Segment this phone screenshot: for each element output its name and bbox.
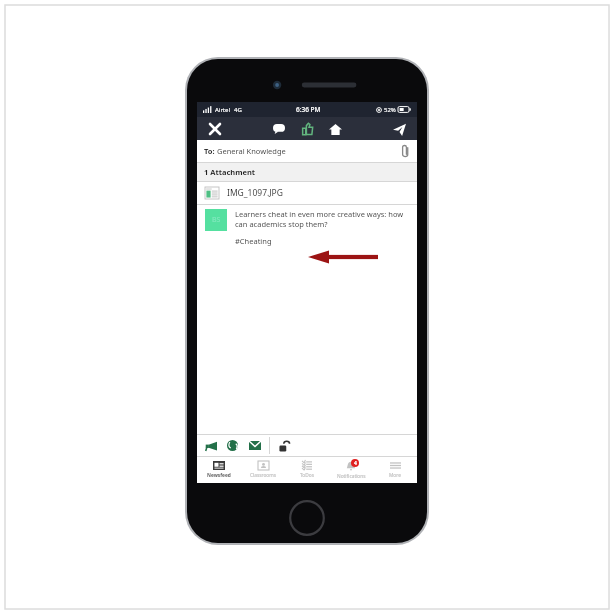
button[interactable]: Send <box>389 119 409 139</box>
staticText: 6:36 PM <box>296 105 321 114</box>
button[interactable]: Unlock <box>276 437 293 454</box>
staticText: #Cheating <box>235 236 272 246</box>
staticText: Learners cheat in even more creative way… <box>235 209 409 229</box>
button[interactable]: Like <box>296 118 318 140</box>
staticText: 52% <box>384 106 396 114</box>
staticText: More <box>389 472 401 479</box>
button[interactable]: Close <box>206 120 224 138</box>
button[interactable]: 4 <box>329 457 373 483</box>
staticText: ToDos <box>300 472 314 479</box>
staticText: Airtel <box>215 106 230 114</box>
staticText: IMG_1097.JPG <box>227 187 283 199</box>
button[interactable]: More <box>373 457 417 483</box>
button[interactable]: Classrooms <box>241 457 285 483</box>
button[interactable]: ToDos <box>285 457 329 483</box>
staticText: 4 <box>354 460 357 467</box>
staticText: 1 Attachment <box>204 167 256 177</box>
staticText: Notifications <box>337 473 366 480</box>
button[interactable]: Newsfeed <box>197 457 241 483</box>
button[interactable]: Comment <box>268 118 290 140</box>
button[interactable]: Announce <box>202 437 219 454</box>
staticText: 4G <box>234 106 242 114</box>
staticText: BS <box>212 215 221 225</box>
staticText: Classrooms <box>250 472 277 479</box>
staticText: Newsfeed <box>207 472 231 479</box>
button[interactable]: Attach <box>394 140 417 162</box>
staticText: To: <box>204 146 215 156</box>
button[interactable]: Home <box>324 118 346 140</box>
staticText: General Knowledge <box>217 146 286 156</box>
button[interactable]: Message <box>246 437 263 454</box>
button[interactable]: Public <box>224 437 241 454</box>
button[interactable]: IMG_1097.JPG <box>197 182 417 204</box>
